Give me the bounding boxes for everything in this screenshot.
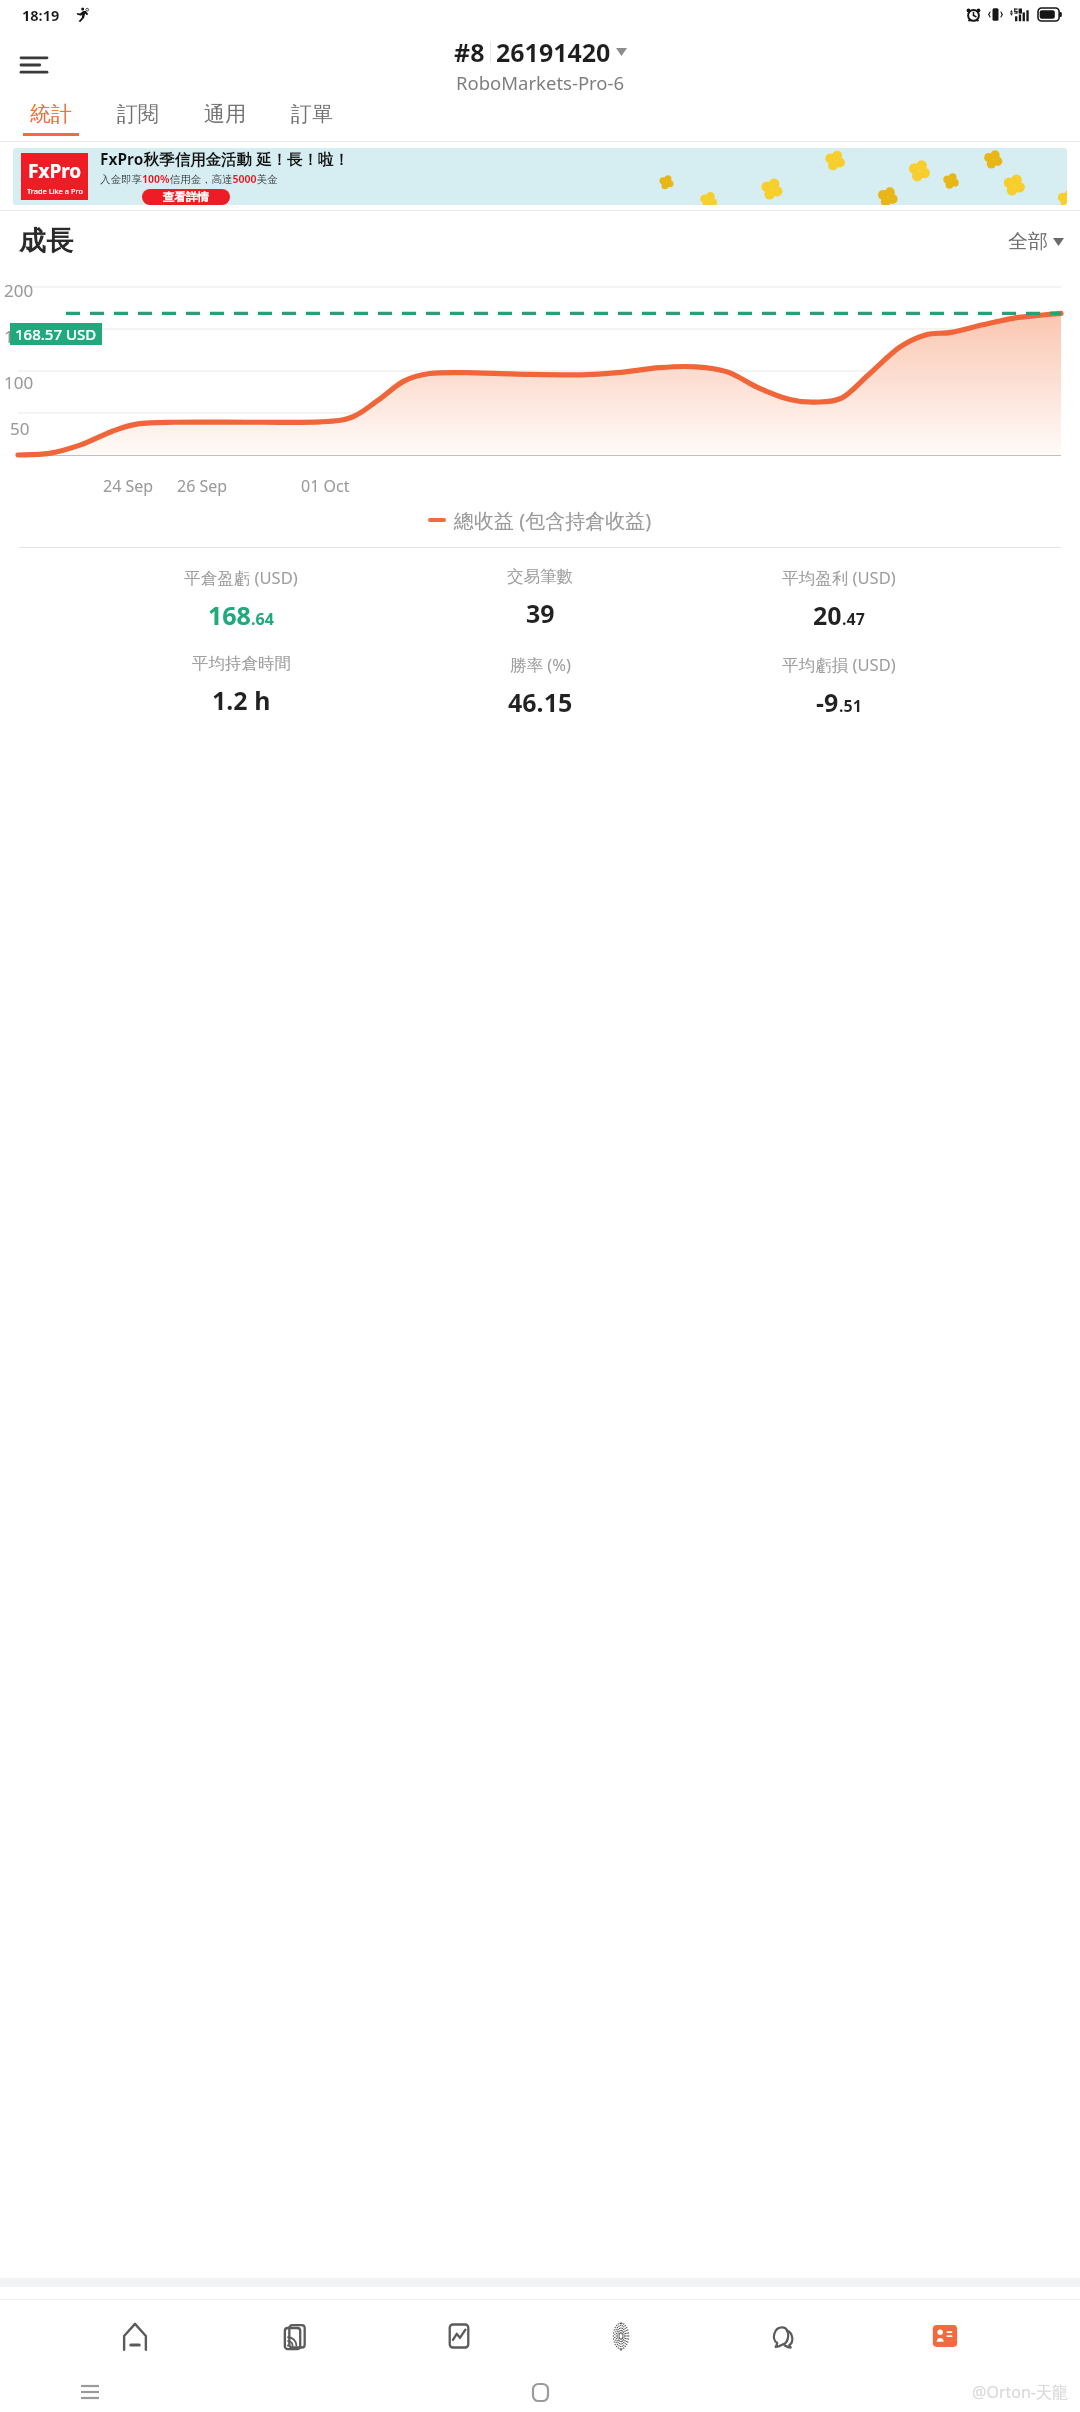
button[interactable]: Charts — [432, 2306, 486, 2366]
button[interactable]: Recents — [72, 2374, 108, 2410]
staticText: RoboMarkets-Pro-6 — [456, 70, 625, 95]
staticText: 平均持倉時間 — [192, 653, 291, 674]
staticText: 平倉盈虧 (USD) — [184, 566, 298, 589]
button[interactable]: 勝率 (%) — [480, 653, 600, 719]
staticText: 平均虧損 (USD) — [782, 653, 896, 676]
staticText: -9 — [816, 685, 839, 719]
staticText: 100 — [4, 371, 34, 394]
button[interactable]: Accounts — [918, 2306, 972, 2366]
button[interactable]: 通用 — [186, 101, 264, 141]
staticText: FxPro — [28, 158, 82, 184]
staticText: .64 — [251, 608, 274, 630]
staticText: 200 — [4, 279, 34, 302]
staticText: 50 — [10, 417, 30, 440]
button[interactable]: #8 — [454, 35, 627, 95]
button[interactable]: FxPro — [13, 148, 1067, 205]
staticText: 通用 — [204, 101, 246, 127]
button[interactable]: 訂閱 — [99, 101, 177, 141]
button[interactable]: 交易筆數 — [480, 566, 600, 630]
staticText: @Orton-天龍 — [972, 2381, 1068, 2403]
staticText: 平均盈利 (USD) — [782, 566, 896, 589]
button[interactable]: 平倉盈虧 (USD) — [181, 566, 301, 632]
staticText: 勝率 (%) — [510, 653, 571, 676]
staticText: 18:19 — [22, 5, 60, 25]
button[interactable]: Home — [522, 2374, 558, 2410]
button[interactable]: 全部 — [1008, 229, 1064, 254]
button[interactable]: 訂單 — [273, 101, 351, 141]
button[interactable]: Trade — [594, 2306, 648, 2366]
staticText: 01 Oct — [301, 475, 350, 497]
staticText: 26191420 — [496, 35, 611, 69]
staticText: 成長 — [19, 224, 73, 258]
staticText: 24 Sep — [103, 475, 154, 497]
staticText: 20 — [813, 598, 842, 632]
button[interactable]: Quotes — [270, 2306, 324, 2366]
staticText: 訂單 — [291, 101, 333, 127]
staticText: 統計 — [30, 101, 72, 127]
button[interactable]: 查看詳情 — [142, 189, 230, 205]
staticText: 入金即享100%信用金，高達5000美金 — [100, 172, 278, 186]
staticText: 交易筆數 — [507, 566, 573, 587]
button[interactable]: 統計 — [12, 101, 90, 141]
staticText: 1.2 h — [212, 683, 271, 717]
staticText: .51 — [839, 695, 862, 717]
staticText: 168 — [208, 598, 251, 632]
staticText: FxPro秋季信用金活動 延！長！啦！ — [100, 148, 349, 169]
staticText: 168.57 USD — [15, 324, 97, 344]
staticText: 26 Sep — [177, 475, 228, 497]
button[interactable]: 平均持倉時間 — [181, 653, 301, 717]
button[interactable]: 平均虧損 (USD) — [779, 653, 899, 719]
staticText: 查看詳情 — [163, 190, 209, 204]
button[interactable]: Menu — [6, 37, 62, 93]
staticText: 總收益 (包含持倉收益) — [454, 507, 652, 534]
staticText: 全部 — [1008, 229, 1048, 254]
staticText: Trade Like a Pro — [27, 186, 83, 196]
staticText: 訂閱 — [117, 101, 159, 127]
button[interactable]: Messages — [756, 2306, 810, 2366]
button[interactable]: 平均盈利 (USD) — [779, 566, 899, 632]
staticText: 39 — [526, 596, 555, 630]
staticText: .47 — [842, 608, 865, 630]
staticText: 46.15 — [508, 685, 573, 719]
staticText: 150 — [4, 325, 34, 348]
staticText: #8 — [454, 35, 485, 69]
button[interactable]: Home — [108, 2306, 162, 2366]
